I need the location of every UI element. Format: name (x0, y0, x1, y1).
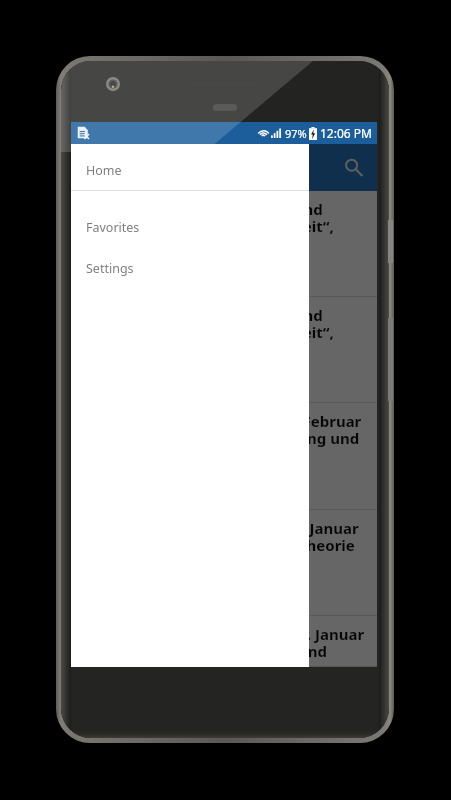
staticText: 97% (285, 126, 307, 141)
button[interactable]: Neuer Termin: Mittwoch, 14. Februar Bibe… (71, 403, 377, 510)
button[interactable]: Favorites (71, 207, 309, 248)
button[interactable]: Search (337, 151, 371, 185)
button[interactable]: Gemeindeabend: Montag, 30. Januar Glaube… (71, 510, 377, 616)
staticText: Rückblick auf das Jahr 2017 und Ausblick… (87, 199, 334, 237)
staticText: Rückblick auf das Jahr 2017 und Ausblick… (87, 305, 334, 343)
staticText: Settings (86, 260, 134, 277)
button[interactable]: Settings (71, 248, 309, 289)
staticText: Gemeindeabend: Montag, 30. Januar Glaube… (87, 518, 359, 556)
staticText: Home (86, 162, 122, 179)
staticText: Neuer Termin: Mittwoch, 14. Februar Bibe… (87, 411, 362, 449)
staticText: Neues Treffen am Montag, 22. Januar Gesp… (87, 624, 365, 662)
staticText: 12:06 PM (320, 125, 372, 141)
button[interactable]: Home (71, 144, 309, 190)
button[interactable]: Neues Treffen am Montag, 22. Januar Gesp… (71, 616, 377, 667)
button[interactable]: Rückblick auf das Jahr 2017 und Ausblick… (71, 191, 377, 297)
button[interactable]: Rückblick auf das Jahr 2017 und Ausblick… (71, 297, 377, 403)
staticText: Favorites (86, 219, 140, 236)
